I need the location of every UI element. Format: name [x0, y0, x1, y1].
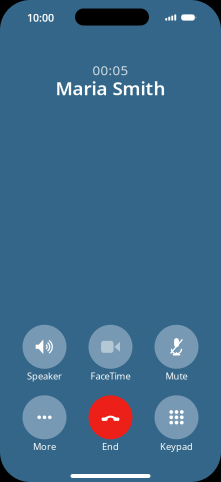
button[interactable]: More: [11, 395, 77, 452]
staticText: Keypad: [160, 440, 193, 452]
staticText: 10:00: [27, 10, 54, 25]
button[interactable]: Keypad: [143, 395, 209, 452]
staticText: FaceTime: [90, 370, 130, 382]
button[interactable]: Speaker: [11, 325, 77, 382]
button[interactable]: FaceTime: [77, 325, 143, 382]
staticText: Maria Smith: [55, 75, 165, 101]
button[interactable]: End: [77, 395, 143, 452]
staticText: Speaker: [27, 370, 62, 382]
staticText: More: [33, 440, 56, 452]
staticText: 00:05: [92, 61, 128, 79]
staticText: Mute: [165, 370, 187, 382]
button[interactable]: Mute: [143, 325, 209, 382]
staticText: End: [102, 440, 119, 452]
